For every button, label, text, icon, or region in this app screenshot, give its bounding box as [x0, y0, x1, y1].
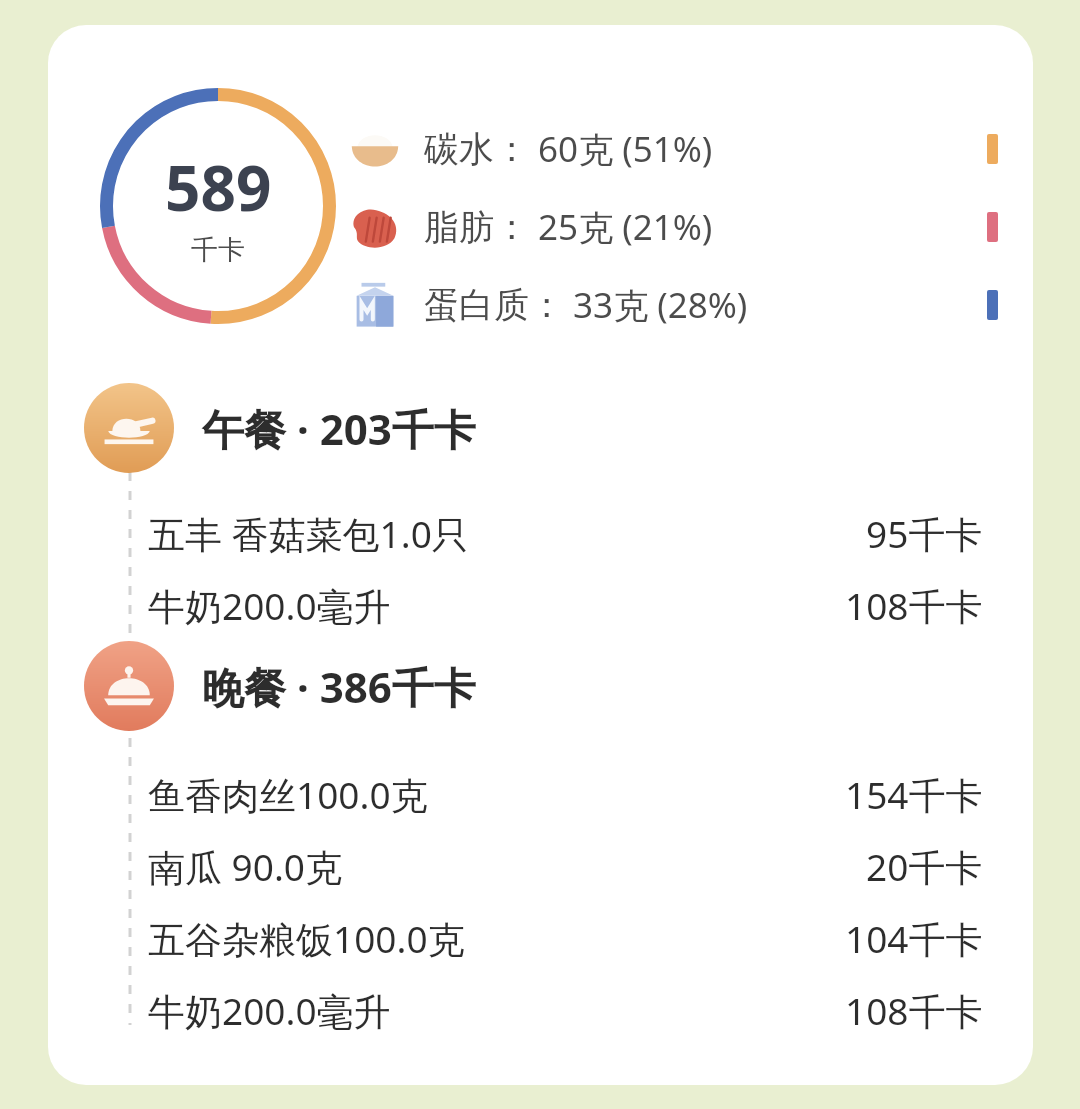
staticText: 碳水：	[424, 127, 529, 171]
button[interactable]: 牛奶200.0毫升	[148, 979, 983, 1041]
button[interactable]: 南瓜 90.0克	[148, 835, 983, 897]
other: Dinner	[84, 641, 174, 731]
button[interactable]: Dinner	[84, 638, 984, 734]
staticText: 104千卡	[845, 913, 983, 964]
button[interactable]: 牛奶200.0毫升	[148, 574, 983, 636]
staticText: 午餐 · 203千卡	[202, 400, 476, 457]
staticText: 牛奶200.0毫升	[148, 580, 391, 631]
staticText: 晚餐 · 386千卡	[202, 658, 476, 715]
button[interactable]: 五谷杂粮饭100.0克	[148, 907, 983, 969]
staticText: 108千卡	[845, 580, 983, 631]
staticText: 33克 (28%)	[564, 281, 748, 329]
staticText: 南瓜 90.0克	[148, 841, 343, 892]
staticText: 60克 (51%)	[529, 125, 713, 173]
staticText: 五丰 香菇菜包1.0只	[148, 508, 469, 559]
button[interactable]: Lunch	[84, 380, 984, 476]
staticText: 鱼香肉丝100.0克	[148, 769, 428, 820]
staticText: 蛋白质：	[424, 283, 564, 327]
staticText: 25克 (21%)	[529, 203, 713, 251]
staticText: 154千卡	[845, 769, 983, 820]
staticText: 589	[165, 145, 272, 229]
button[interactable]: Fat	[348, 191, 998, 263]
staticText: 95千卡	[866, 508, 983, 559]
staticText: 108千卡	[845, 985, 983, 1036]
button[interactable]: 五丰 香菇菜包1.0只	[148, 502, 983, 564]
button[interactable]: 鱼香肉丝100.0克	[148, 763, 983, 825]
staticText: 千卡	[191, 233, 245, 267]
staticText: 脂肪：	[424, 205, 529, 249]
staticText: 牛奶200.0毫升	[148, 985, 391, 1036]
staticText: 五谷杂粮饭100.0克	[148, 913, 465, 964]
other: Lunch	[84, 383, 174, 473]
button[interactable]: Carbohydrates	[348, 113, 998, 185]
button[interactable]: Protein	[348, 269, 998, 341]
staticText: 20千卡	[866, 841, 983, 892]
